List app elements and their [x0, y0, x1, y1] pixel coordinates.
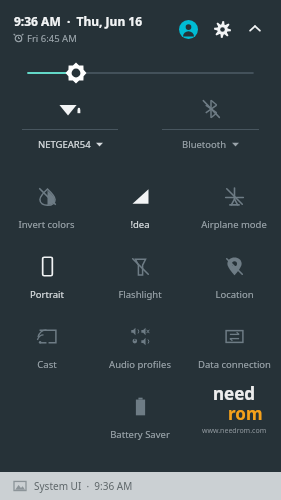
- staticText: Flashlight: [118, 288, 162, 301]
- staticText: need: [213, 382, 256, 405]
- staticText: Bluetooth: [182, 138, 227, 151]
- button[interactable]: Data connection: [187, 312, 281, 382]
- button[interactable]: Bluetooth: [140, 88, 281, 156]
- button[interactable]: Settings: [205, 12, 239, 46]
- staticText: System UI · 9:36 AM: [34, 479, 133, 493]
- button[interactable]: Cast: [0, 312, 93, 382]
- staticText: Data connection: [198, 358, 271, 371]
- button[interactable]: Location: [187, 242, 281, 312]
- button[interactable]: Portrait: [0, 242, 93, 312]
- staticText: NETGEAR54: [38, 138, 91, 151]
- button[interactable]: NETGEAR54: [0, 88, 140, 156]
- staticText: Location: [215, 288, 254, 301]
- button[interactable]: Collapse: [239, 13, 271, 45]
- button[interactable]: Battery Saver: [93, 382, 187, 452]
- button[interactable]: Airplane mode: [187, 172, 281, 242]
- staticText: rom: [228, 402, 263, 425]
- staticText: Audio profiles: [109, 358, 171, 371]
- button[interactable]: User profile: [171, 12, 205, 46]
- staticText: Fri 6:45 AM: [27, 32, 77, 45]
- staticText: Battery Saver: [110, 428, 170, 441]
- button[interactable]: Invert colors: [0, 172, 93, 242]
- button[interactable]: Brightness: [0, 58, 281, 88]
- staticText: www.needrom.com: [202, 426, 267, 436]
- button[interactable]: !dea: [93, 172, 187, 242]
- button[interactable]: Flashlight: [93, 242, 187, 312]
- staticText: 9:36 AM · Thu, Jun 16: [14, 13, 143, 29]
- staticText: !dea: [130, 218, 150, 231]
- staticText: Invert colors: [18, 218, 75, 231]
- button[interactable]: Audio profiles: [93, 312, 187, 382]
- button[interactable]: System UI · 9:36 AM: [0, 472, 281, 500]
- staticText: Cast: [37, 358, 57, 371]
- staticText: Portrait: [30, 288, 64, 301]
- staticText: Airplane mode: [201, 218, 267, 231]
